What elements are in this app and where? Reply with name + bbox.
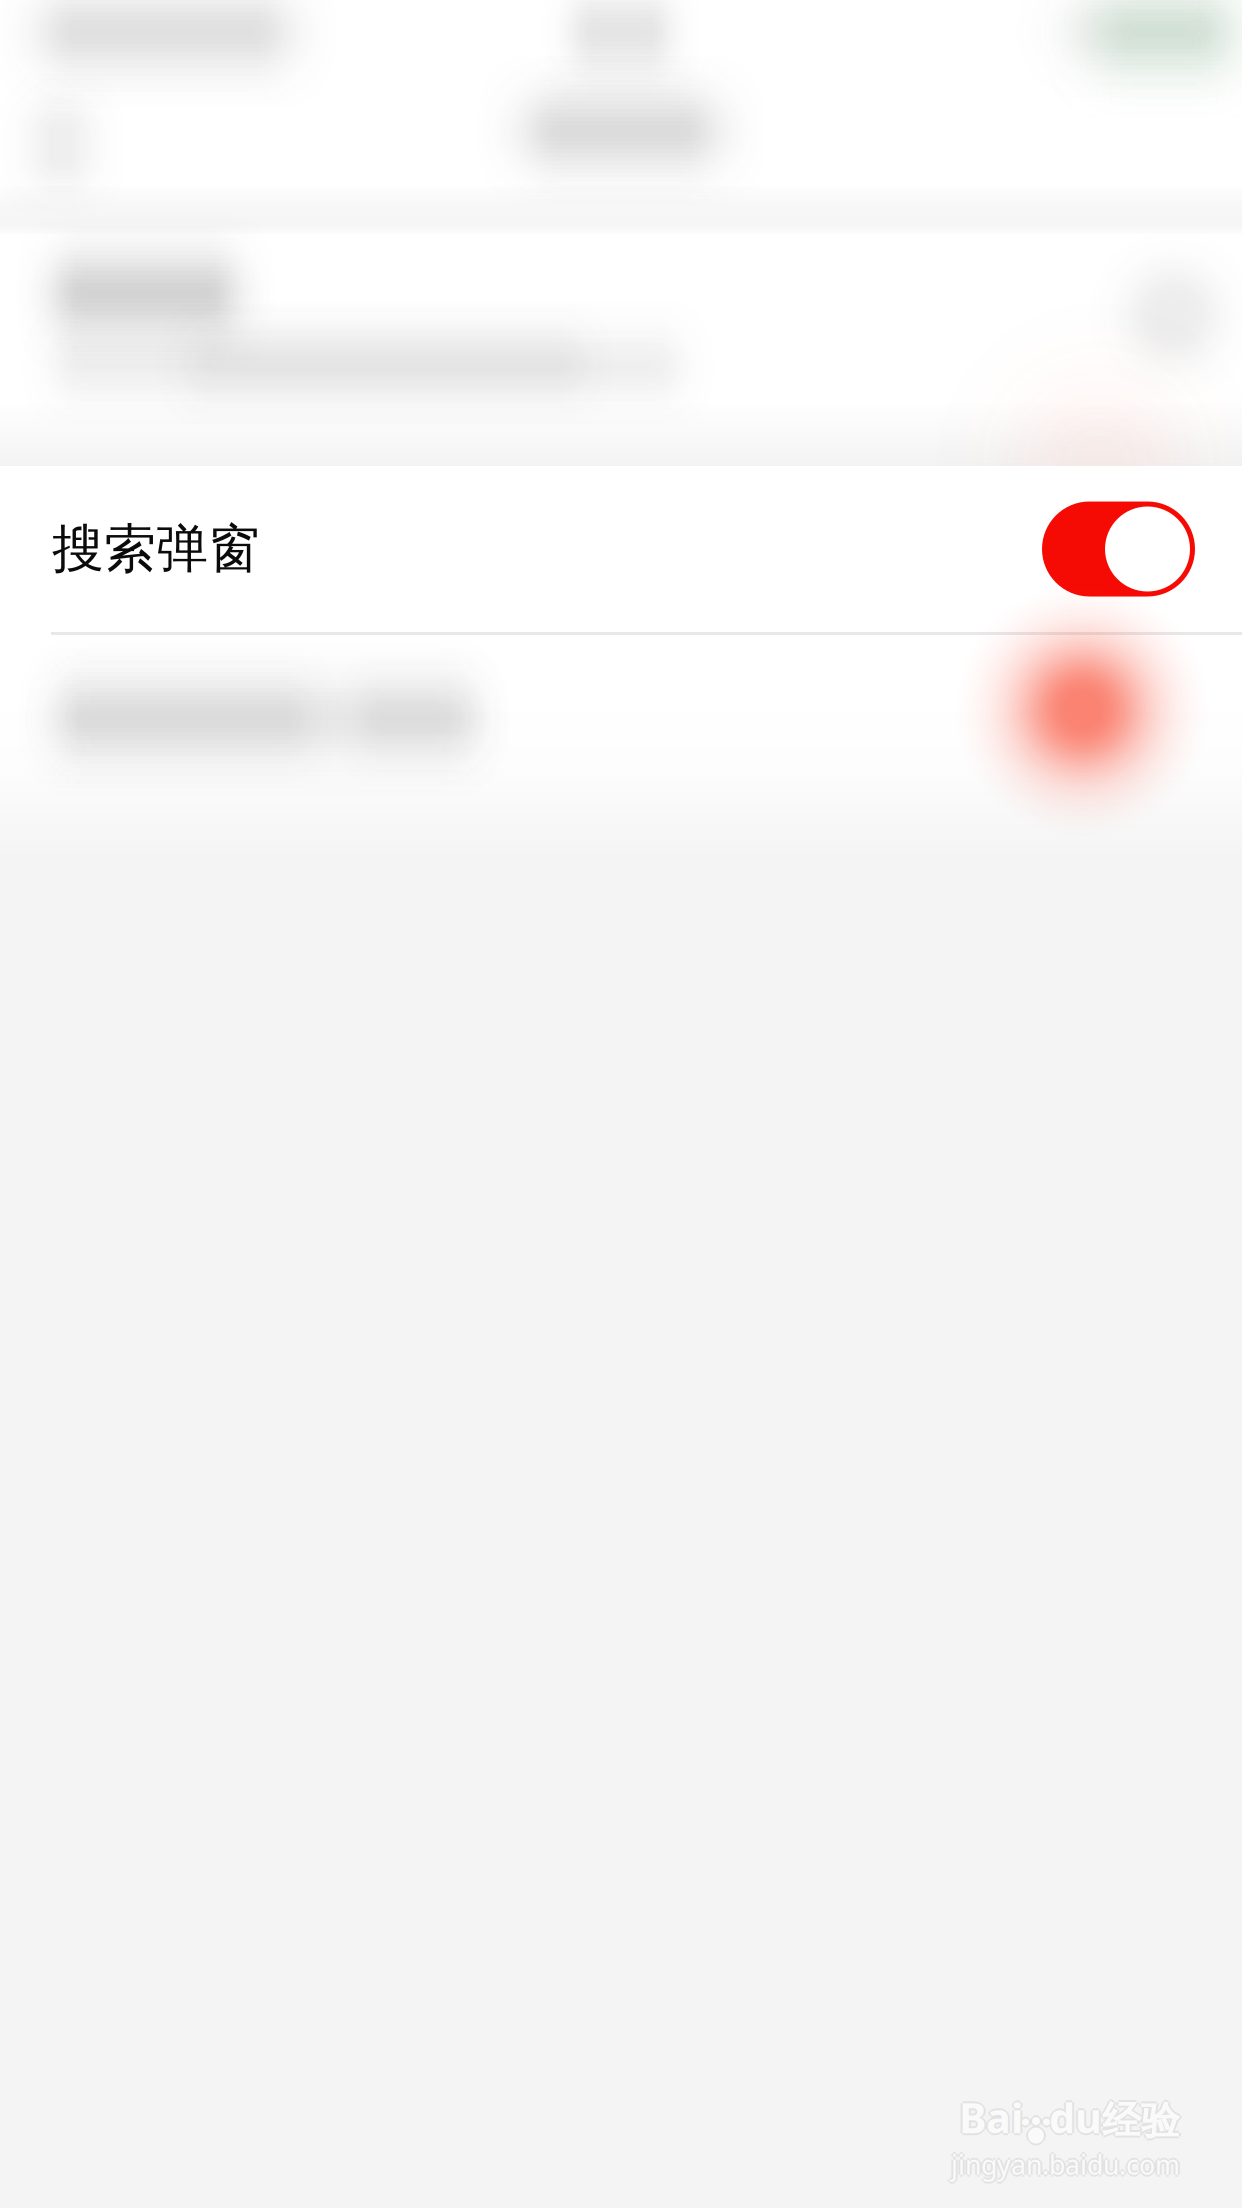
staticText: 搜索弹窗 [52,517,260,581]
staticText: du [1049,2088,1102,2143]
staticText: Bai [961,2090,1025,2145]
staticText: du [1049,2090,1102,2145]
button[interactable]: 搜索弹窗开关 [1042,501,1195,596]
staticText: jingyan.baidu.com [951,2149,1180,2184]
staticText: Bai [959,2090,1023,2145]
staticText: du [1049,2092,1102,2147]
staticText: 经验 [1102,2095,1180,2143]
staticText: 经验 [1102,2097,1180,2145]
staticText: 经验 [1100,2097,1178,2145]
staticText: jingyan.baidu.com [951,2147,1180,2182]
staticText: Bai [957,2090,1021,2145]
staticText: du [1051,2090,1104,2145]
staticText: jingyan.baidu.com [951,2145,1180,2180]
button[interactable]: 搜索弹窗 [0,466,1242,632]
staticText: 经验 [1102,2099,1180,2147]
staticText: 经验 [1104,2097,1182,2145]
staticText: du [1047,2090,1100,2145]
staticText: jingyan.baidu.com [949,2147,1178,2182]
staticText: Bai [959,2092,1023,2147]
staticText: Bai [959,2088,1023,2143]
staticText: jingyan.baidu.com [953,2147,1182,2182]
